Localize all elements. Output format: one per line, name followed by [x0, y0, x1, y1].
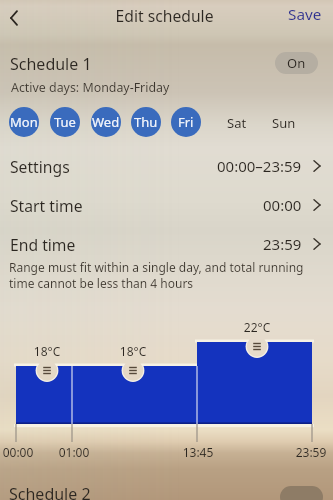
- staticText: Sun: [272, 114, 296, 132]
- button[interactable]: Settings: [0, 148, 333, 184]
- button[interactable]: Sun: [268, 107, 300, 139]
- button[interactable]: Start time: [0, 187, 333, 223]
- button[interactable]: Mon: [9, 107, 39, 137]
- button[interactable]: Tue: [50, 107, 80, 137]
- staticText: 00:00: [0, 444, 58, 460]
- staticText: Edit schedule: [0, 5, 331, 26]
- staticText: 22°C: [217, 319, 297, 335]
- staticText: Schedule 1: [10, 53, 92, 75]
- button[interactable]: Sat: [221, 107, 253, 139]
- staticText: 23:59: [263, 234, 302, 254]
- staticText: 01:00: [34, 444, 114, 460]
- staticText: Fri: [178, 113, 194, 131]
- button[interactable]: Back: [1, 5, 27, 31]
- staticText: Save: [288, 4, 322, 25]
- staticText: 00:00–23:59: [217, 156, 302, 176]
- button[interactable]: Wed: [91, 107, 121, 137]
- staticText: 13:45: [158, 444, 238, 460]
- button[interactable]: End time: [0, 226, 333, 262]
- button[interactable]: [280, 486, 323, 500]
- button[interactable]: Save: [281, 2, 329, 26]
- button[interactable]: Fri: [171, 107, 201, 137]
- staticText: Settings: [10, 156, 70, 177]
- staticText: On: [287, 54, 306, 72]
- staticText: Active days: Monday-Friday: [11, 79, 170, 96]
- staticText: Schedule 2: [9, 483, 91, 500]
- staticText: 18°C: [93, 343, 173, 359]
- staticText: 18°C: [7, 343, 87, 359]
- button[interactable]: Thu: [131, 107, 161, 137]
- staticText: Start time: [10, 195, 83, 216]
- staticText: End time: [10, 234, 76, 255]
- staticText: Mon: [10, 113, 38, 131]
- staticText: Tue: [54, 113, 76, 131]
- staticText: Thu: [134, 113, 158, 131]
- button[interactable]: On: [275, 52, 318, 74]
- staticText: Wed: [92, 113, 120, 131]
- staticText: Sat: [227, 114, 247, 132]
- staticText: Range must fit within a single day, and …: [9, 259, 304, 292]
- staticText: 23:59: [271, 444, 333, 460]
- staticText: 00:00: [263, 195, 302, 215]
